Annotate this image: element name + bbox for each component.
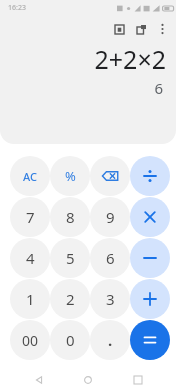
staticText: 9 — [106, 207, 115, 227]
button[interactable]: 0 — [50, 320, 90, 360]
button[interactable]: . — [90, 320, 130, 360]
button[interactable]: 8 — [50, 197, 90, 237]
button[interactable]: 4 — [10, 238, 50, 278]
staticText: 2+2×2 — [94, 42, 166, 76]
button[interactable]: Subtract — [130, 238, 170, 278]
staticText: 3 — [106, 289, 115, 309]
button[interactable]: 3 — [90, 279, 130, 319]
button[interactable]: Home — [77, 369, 99, 391]
button[interactable]: Divide — [130, 156, 170, 196]
staticText: % — [65, 167, 76, 185]
button[interactable]: % — [50, 156, 90, 196]
button[interactable]: 9 — [90, 197, 130, 237]
button[interactable]: 6 — [90, 238, 130, 278]
button[interactable]: Backspace — [90, 156, 130, 196]
staticText: 6 — [154, 78, 163, 98]
staticText: 2 — [66, 289, 75, 309]
button[interactable]: Multiply — [130, 197, 170, 237]
staticText: . — [108, 330, 113, 350]
staticText: AC — [23, 169, 37, 184]
button[interactable]: 5 — [50, 238, 90, 278]
staticText: 5 — [66, 248, 75, 268]
button[interactable]: Unit converter — [130, 18, 152, 40]
button[interactable]: Add — [130, 279, 170, 319]
button[interactable]: Equals — [130, 320, 170, 360]
button[interactable]: History — [108, 18, 130, 40]
button[interactable]: 7 — [10, 197, 50, 237]
staticText: 1 — [26, 289, 35, 309]
button[interactable]: Back — [28, 369, 50, 391]
staticText: 16:23 — [8, 3, 26, 13]
button[interactable]: Recent apps — [127, 369, 149, 391]
button[interactable]: 00 — [10, 320, 50, 360]
staticText: 4 — [26, 248, 35, 268]
button[interactable]: 1 — [10, 279, 50, 319]
staticText: 6 — [106, 248, 115, 268]
button[interactable]: AC — [10, 156, 50, 196]
staticText: 0 — [66, 330, 75, 350]
staticText: 00 — [22, 331, 39, 350]
staticText: 7 — [26, 207, 35, 227]
button[interactable]: More options — [152, 19, 172, 39]
staticText: 8 — [66, 207, 75, 227]
button[interactable]: 2 — [50, 279, 90, 319]
